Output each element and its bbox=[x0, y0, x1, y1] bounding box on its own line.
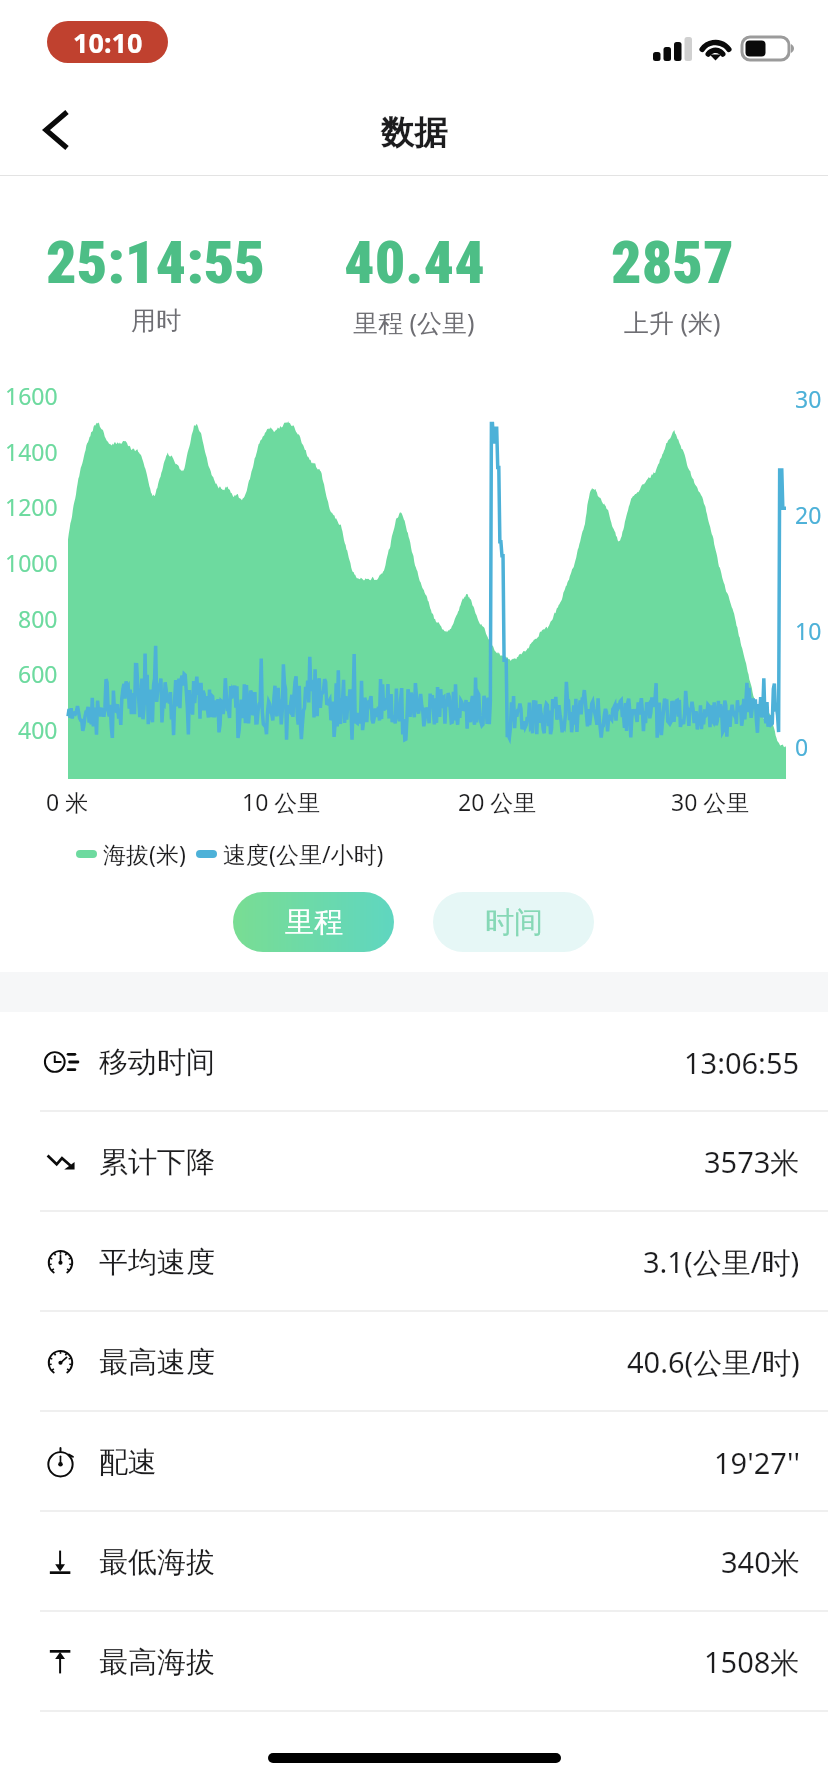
button[interactable]: 最高速度 bbox=[0, 1312, 828, 1412]
staticText: 时间 bbox=[485, 904, 543, 941]
staticText: 1000 bbox=[5, 547, 58, 578]
staticText: 0 bbox=[795, 731, 809, 762]
button[interactable]: 里程 bbox=[233, 892, 394, 952]
staticText: 0 米 bbox=[46, 786, 89, 817]
staticText: 30 公里 bbox=[671, 786, 750, 817]
staticText: 3573米 bbox=[704, 1142, 800, 1182]
staticText: 19'27'' bbox=[714, 1443, 800, 1482]
staticText: 10 公里 bbox=[242, 786, 321, 817]
staticText: 1508米 bbox=[704, 1642, 800, 1682]
staticText: 10:10 bbox=[73, 24, 143, 61]
staticText: 平均速度 bbox=[99, 1244, 215, 1281]
staticText: 10 bbox=[795, 615, 822, 646]
button[interactable]: 配速 bbox=[0, 1412, 828, 1512]
button[interactable]: 最低海拔 bbox=[0, 1512, 828, 1612]
button[interactable]: Back bbox=[26, 97, 94, 165]
staticText: 里程 bbox=[285, 904, 343, 941]
staticText: 1600 bbox=[5, 380, 58, 411]
staticText: 20 bbox=[795, 499, 822, 530]
staticText: 上升 (米) bbox=[624, 305, 721, 339]
staticText: 30 bbox=[795, 383, 822, 414]
staticText: 40.44 bbox=[344, 227, 485, 297]
staticText: 海拔(米) bbox=[103, 838, 186, 869]
staticText: 累计下降 bbox=[99, 1144, 215, 1181]
button[interactable]: 时间 bbox=[433, 892, 594, 952]
staticText: 40.6(公里/时) bbox=[627, 1342, 800, 1382]
button[interactable]: 累计下降 bbox=[0, 1112, 828, 1212]
staticText: 400 bbox=[18, 714, 58, 745]
button[interactable]: 移动时间 bbox=[0, 1012, 828, 1112]
button[interactable]: 最高海拔 bbox=[0, 1612, 828, 1712]
staticText: 最低海拔 bbox=[99, 1544, 215, 1581]
staticText: 里程 (公里) bbox=[353, 305, 475, 339]
staticText: 600 bbox=[18, 658, 58, 689]
staticText: 用时 bbox=[131, 305, 181, 336]
staticText: 1200 bbox=[5, 491, 58, 522]
staticText: 1400 bbox=[5, 436, 58, 467]
button[interactable]: 平均速度 bbox=[0, 1212, 828, 1312]
staticText: 数据 bbox=[381, 112, 447, 154]
staticText: 20 公里 bbox=[458, 786, 537, 817]
staticText: 移动时间 bbox=[99, 1044, 215, 1081]
staticText: 3.1(公里/时) bbox=[643, 1242, 800, 1282]
staticText: 速度(公里/小时) bbox=[223, 838, 384, 869]
staticText: 340米 bbox=[721, 1542, 800, 1582]
staticText: 最高速度 bbox=[99, 1344, 215, 1381]
staticText: 配速 bbox=[99, 1444, 157, 1481]
staticText: 最高海拔 bbox=[99, 1644, 215, 1681]
staticText: 25:14:55 bbox=[46, 227, 266, 297]
staticText: 13:06:55 bbox=[684, 1043, 800, 1082]
staticText: 2857 bbox=[611, 227, 734, 297]
staticText: 800 bbox=[18, 603, 58, 634]
